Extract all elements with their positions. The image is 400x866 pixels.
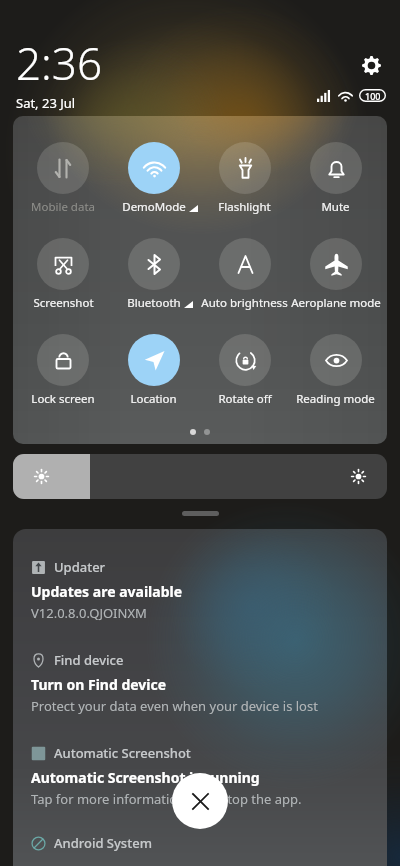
staticText: 100 [365,90,381,102]
staticText: Automatic Screenshot [54,744,191,762]
button[interactable]: Android System [31,834,369,852]
staticText: Tap for more information or to stop the … [31,790,302,808]
button[interactable]: Settings [358,52,384,78]
staticText: Updates are available [31,582,183,601]
button[interactable]: Bluetooth [108,238,199,311]
staticText: Screenshot [33,295,94,311]
staticText: Flashlight [218,199,271,215]
staticText: 2:36 [16,33,103,93]
button[interactable]: DemoMode [108,142,199,215]
button[interactable]: Screenshot [18,238,108,311]
button[interactable]: Find device [31,651,369,715]
button[interactable]: Location [108,334,199,407]
button[interactable]: Reading mode [290,334,381,407]
button[interactable]: Auto brightness [199,238,290,311]
staticText: Lock screen [31,391,95,407]
staticText: Protect your data even when your device … [31,697,318,715]
staticText: Mobile data [31,199,95,215]
staticText: Auto brightness [201,295,288,311]
button[interactable]: Updater [31,558,369,622]
button[interactable]: Mute [290,142,381,215]
button[interactable]: Aeroplane mode [290,238,381,311]
staticText: Aeroplane mode [291,295,381,311]
staticText: DemoMode [122,199,186,215]
button[interactable]: Automatic Screenshot [31,744,369,808]
button[interactable]: Flashlight [199,142,290,215]
staticText: V12.0.8.0.QJOINXM [31,604,147,622]
staticText: Bluetooth [127,295,181,311]
button[interactable]: Lock screen [18,334,108,407]
staticText: Location [130,391,177,407]
button[interactable]: Clear all notifications [172,773,228,829]
staticText: Updater [54,558,106,576]
button[interactable]: Rotate off [199,334,290,407]
staticText: Sat, 23 Jul [16,94,76,112]
staticText: Turn on Find device [31,675,167,694]
button[interactable]: Brightness [13,454,387,499]
button[interactable]: Mobile data [18,142,108,215]
staticText: Automatic Screenshot is running [31,768,260,787]
staticText: Find device [54,651,124,669]
staticText: Reading mode [296,391,375,407]
staticText: Rotate off [218,391,272,407]
staticText: Android System [54,834,152,852]
staticText: Mute [321,199,350,215]
